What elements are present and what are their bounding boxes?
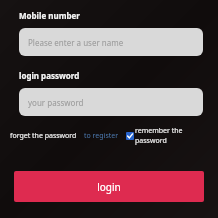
staticText: Mobile number xyxy=(19,10,80,21)
button[interactable]: your password xyxy=(19,88,203,116)
staticText: to register xyxy=(84,131,119,141)
staticText: login xyxy=(97,180,121,194)
staticText: forget the password xyxy=(10,131,77,141)
button[interactable]: remember the password xyxy=(126,126,212,146)
button[interactable]: login xyxy=(14,171,204,202)
staticText: remember the password xyxy=(135,126,212,146)
staticText: login password xyxy=(19,70,80,81)
staticText: Please enter a user name xyxy=(28,37,124,48)
button[interactable]: to register xyxy=(84,131,119,141)
staticText: your password xyxy=(28,97,84,108)
button[interactable]: forget the password xyxy=(10,131,77,141)
button[interactable]: Please enter a user name xyxy=(19,28,203,56)
